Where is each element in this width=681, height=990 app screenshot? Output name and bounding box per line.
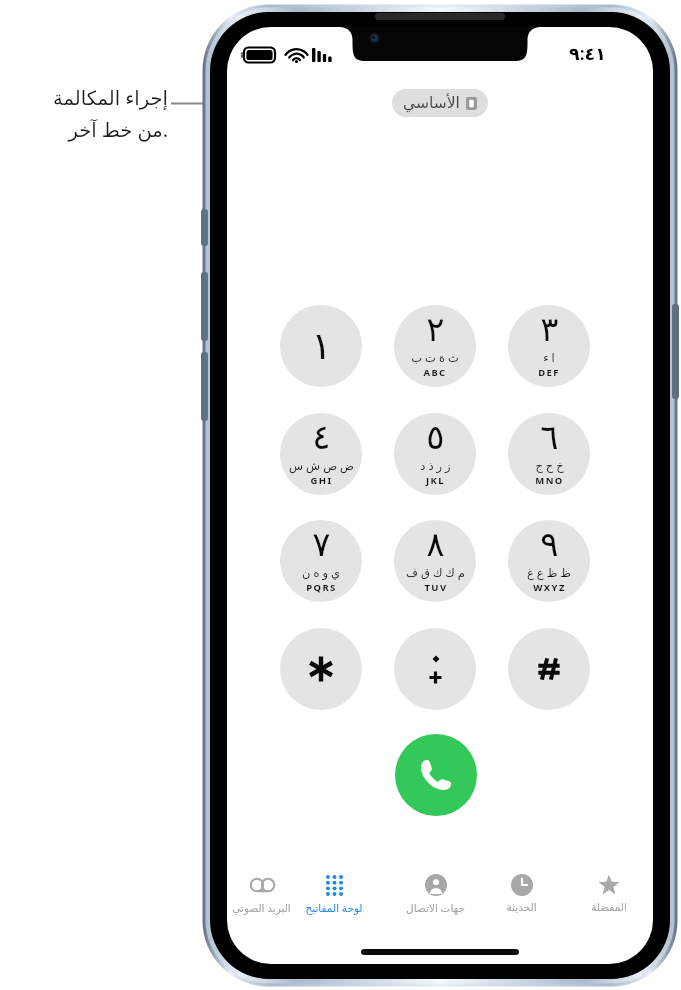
staticText: ٧ (312, 524, 331, 564)
staticText: TUV (424, 581, 448, 594)
button[interactable] (394, 628, 476, 710)
staticText: GHI (310, 474, 333, 487)
staticText: الحديثة (506, 901, 537, 913)
staticText: ١ (311, 324, 332, 368)
button[interactable]: ٣ (508, 305, 590, 387)
staticText: م ك ك ق ف (406, 565, 465, 581)
staticText: ٣ (540, 309, 559, 349)
staticText: JKL (426, 474, 445, 487)
button[interactable]: ٩ (508, 520, 590, 602)
staticText: ض ص ش س (289, 458, 354, 474)
staticText: الأساسي (403, 94, 460, 112)
staticText: ا ء (543, 350, 555, 366)
button[interactable]: Call (395, 734, 477, 816)
button[interactable]: الأساسي (392, 89, 488, 117)
staticText: ظ ظ ع غ (527, 565, 571, 581)
button[interactable]: البريد الصوتي (227, 872, 303, 926)
button[interactable]: لوحة المفاتيح (292, 872, 376, 926)
button[interactable]: ٦ (508, 413, 590, 495)
staticText: ٨ (426, 524, 445, 564)
button[interactable]: ٥ (394, 413, 476, 495)
staticText: لوحة المفاتيح (305, 901, 363, 915)
button[interactable] (280, 628, 362, 710)
staticText: ٩:٤١ (569, 41, 606, 65)
button[interactable]: جهات الاتصال (393, 872, 477, 926)
staticText: ٥ (426, 417, 445, 457)
staticText: ٩ (540, 524, 559, 564)
button[interactable]: ٤ (280, 413, 362, 495)
staticText: MNO (535, 474, 564, 487)
staticText: DEF (538, 366, 560, 379)
button[interactable]: المفضلة (567, 872, 651, 926)
button[interactable]: ١ (280, 305, 362, 387)
button[interactable]: الحديثة (479, 872, 563, 926)
button[interactable]: ٧ (280, 520, 362, 602)
button[interactable] (508, 628, 590, 710)
staticText: ي و ه ن (302, 565, 340, 581)
button[interactable]: ٨ (394, 520, 476, 602)
button[interactable]: ٢ (394, 305, 476, 387)
staticText: البريد الصوتي (232, 901, 291, 915)
staticText: ABC (423, 366, 447, 379)
staticText: ٢ (426, 309, 445, 349)
staticText: خ ح ج (535, 458, 564, 474)
staticText: WXYZ (533, 581, 566, 594)
staticText: من خط آخر. (8, 116, 168, 143)
staticText: إجراء المكالمة (8, 84, 168, 111)
staticText: ٤ (312, 417, 331, 457)
staticText: جهات الاتصال (406, 901, 465, 915)
staticText: المفضلة (591, 901, 627, 913)
staticText: ز ر ذ د (420, 458, 451, 474)
staticText: PQRS (306, 581, 337, 594)
staticText: ٦ (540, 417, 559, 457)
staticText: ث ة ت ب (411, 350, 459, 366)
